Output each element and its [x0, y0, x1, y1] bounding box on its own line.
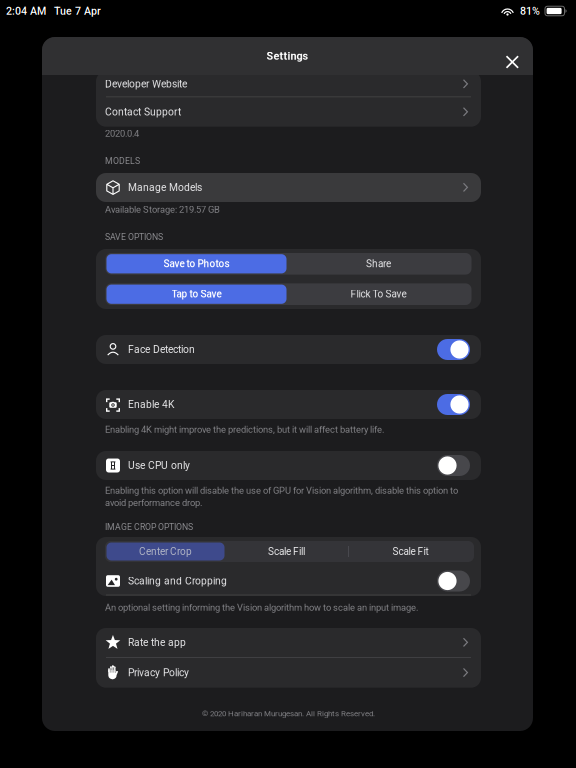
staticText: Tap to Save	[171, 288, 221, 300]
staticText: Manage Models	[128, 181, 202, 193]
staticText: Flick To Save	[350, 288, 406, 300]
button[interactable]: Use CPU only	[96, 451, 481, 480]
staticText: Scale Fill	[268, 546, 305, 557]
button[interactable]: Privacy Policy	[96, 658, 481, 688]
staticText: Center Crop	[139, 546, 192, 557]
button[interactable]: Developer Website	[96, 71, 481, 96]
staticText: MODELS	[105, 156, 140, 166]
staticText: 81%	[520, 5, 540, 17]
staticText: Settings	[266, 50, 308, 62]
staticText: Scaling and Cropping	[128, 575, 227, 587]
button[interactable]: Tap to Save	[106, 285, 286, 304]
staticText: An optional setting informing the Vision…	[105, 602, 418, 613]
button[interactable]: Rate the app	[96, 628, 481, 657]
staticText: Scale Fit	[392, 546, 428, 557]
staticText: Rate the app	[128, 636, 186, 648]
staticText: Enabling 4K might improve the prediction…	[105, 424, 384, 435]
staticText: Contact Support	[105, 106, 181, 118]
staticText: Privacy Policy	[128, 667, 189, 679]
button[interactable]: Share	[286, 254, 470, 273]
button[interactable]: Save to Photos	[106, 254, 286, 273]
staticText: Use CPU only	[128, 459, 190, 471]
button[interactable]: Close	[494, 44, 530, 80]
staticText: 2:04 AM	[6, 5, 46, 17]
staticText: Enabling this option will disable the us…	[105, 485, 458, 496]
button[interactable]: Enable 4K	[96, 390, 481, 419]
staticText: Developer Website	[105, 78, 187, 90]
staticText: © 2020 Hariharan Murugesan. All Rights R…	[202, 709, 375, 718]
staticText: Save to Photos	[163, 258, 229, 270]
button[interactable]: Scale Fill	[224, 542, 348, 560]
staticText: Enable 4K	[128, 398, 174, 410]
staticText: SAVE OPTIONS	[105, 232, 163, 242]
staticText: Tue 7 Apr	[54, 5, 101, 17]
button[interactable]: Flick To Save	[286, 285, 470, 304]
staticText: IMAGE CROP OPTIONS	[105, 522, 193, 532]
staticText: avoid performance drop.	[105, 497, 202, 508]
staticText: Share	[366, 258, 391, 270]
staticText: Face Detection	[128, 343, 195, 355]
staticText: Available Storage: 219.57 GB	[105, 204, 220, 215]
button[interactable]: Center Crop	[106, 542, 224, 560]
staticText: 2020.0.4	[105, 128, 139, 139]
button[interactable]: Manage Models	[96, 173, 481, 202]
button[interactable]: Scaling and Cropping	[96, 566, 481, 596]
button[interactable]: Scale Fit	[348, 542, 472, 560]
button[interactable]: Face Detection	[96, 335, 481, 364]
button[interactable]: Contact Support	[96, 97, 481, 127]
